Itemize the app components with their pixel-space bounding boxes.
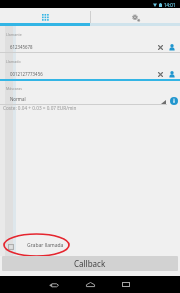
staticText: 612345678 xyxy=(10,44,154,50)
button[interactable]: Back xyxy=(36,276,72,293)
button[interactable]: Settings tab xyxy=(90,8,180,23)
button[interactable]: Callback xyxy=(2,256,178,271)
staticText: Llamante xyxy=(6,32,22,37)
button[interactable]: Dialpad tab xyxy=(0,8,90,23)
staticText: Callback xyxy=(74,258,106,269)
button[interactable]: Choose contact xyxy=(166,43,178,51)
button[interactable]: Clear xyxy=(154,70,166,78)
staticText: Coste: 0.04 + 0.03 = 0.07 EUR/min xyxy=(3,105,77,111)
button[interactable]: Clear xyxy=(154,43,166,51)
staticText: 0012127773456 xyxy=(10,71,154,77)
staticText: Llamado xyxy=(6,59,21,64)
staticText: Grabar llamada xyxy=(27,242,64,249)
button[interactable]: Choose contact xyxy=(166,70,178,78)
button[interactable]: Recent apps xyxy=(108,276,144,293)
staticText: 14:01 xyxy=(164,2,176,8)
button[interactable]: Grabar llamada xyxy=(8,239,180,251)
staticText: Normal xyxy=(10,96,161,102)
staticText: Máscaras xyxy=(6,86,22,91)
button[interactable]: Home xyxy=(72,276,108,293)
button[interactable]: Info xyxy=(167,94,180,108)
